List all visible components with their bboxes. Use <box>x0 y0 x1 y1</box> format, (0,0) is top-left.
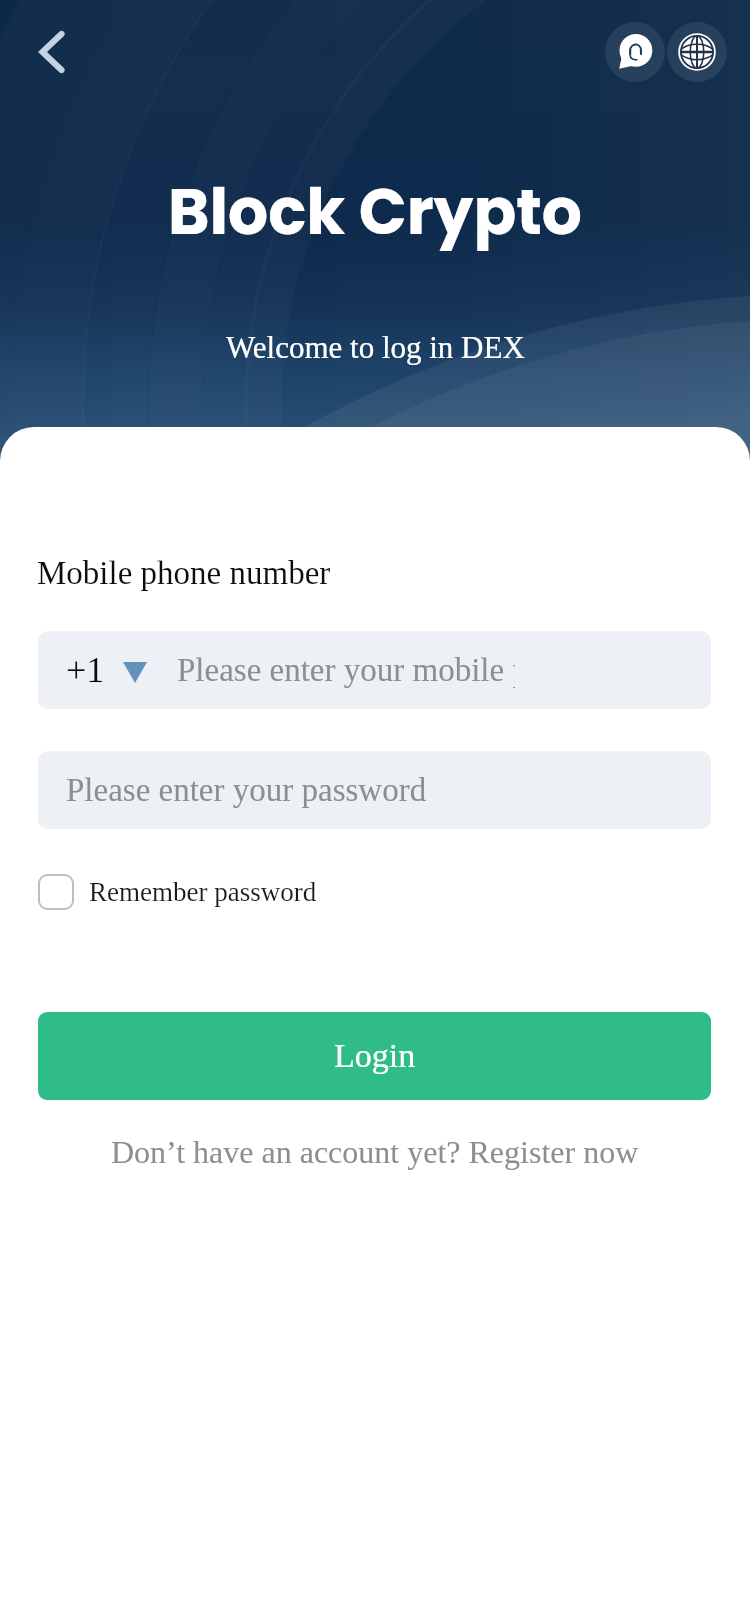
staticText: Block Crypto <box>168 168 582 256</box>
staticText: Login <box>334 1037 416 1075</box>
staticText: Please enter your mobile phone number <box>177 652 515 689</box>
staticText: Mobile phone number <box>37 555 331 592</box>
button[interactable]: Don’t have an account yet? Register now <box>0 1126 750 1176</box>
staticText: Don’t have an account yet? Register now <box>111 1134 639 1169</box>
staticText: Remember password <box>89 877 317 907</box>
button[interactable]: Language <box>667 22 727 82</box>
staticText: Please enter your password <box>66 772 427 809</box>
button[interactable]: Login <box>38 1012 711 1100</box>
button[interactable]: Remember password <box>38 866 317 918</box>
button[interactable]: Please enter your password <box>38 751 711 829</box>
button[interactable]: +1 <box>38 631 711 709</box>
button[interactable]: Customer support <box>605 22 665 82</box>
staticText: +1 <box>66 650 105 690</box>
staticText: Welcome to log in DEX <box>226 330 525 364</box>
button[interactable]: Back <box>20 20 84 84</box>
